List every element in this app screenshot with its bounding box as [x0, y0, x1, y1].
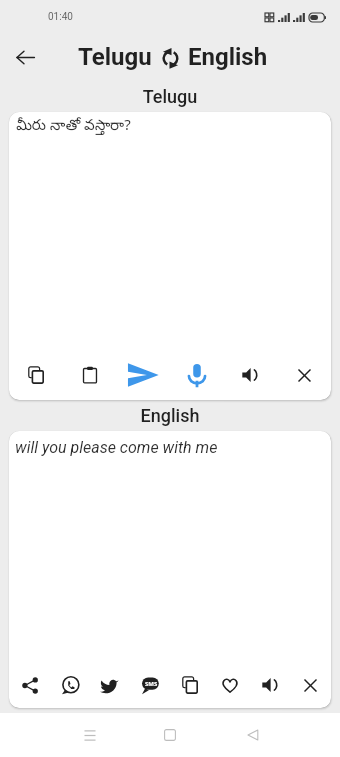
button[interactable]: Swap languages	[152, 39, 188, 75]
staticText: English	[188, 43, 268, 71]
staticText: will you please come with me	[15, 438, 218, 457]
button[interactable]: Clear	[287, 350, 321, 400]
staticText: Telugu	[78, 43, 152, 71]
button[interactable]: Back	[233, 713, 273, 757]
staticText: మీరు నాతో వస్తారా?	[16, 114, 131, 137]
button[interactable]: Translate	[126, 350, 160, 400]
button[interactable]: Favorite	[213, 662, 247, 708]
button[interactable]: Share	[13, 662, 47, 708]
button[interactable]: Back	[6, 38, 44, 76]
staticText: English	[0, 405, 340, 426]
button[interactable]: Copy	[19, 350, 53, 400]
staticText: SMS	[145, 680, 158, 688]
staticText: Telugu	[0, 86, 340, 107]
staticText: 01:40	[48, 11, 73, 23]
button[interactable]: Paste	[73, 350, 107, 400]
button[interactable]: Speak	[180, 350, 214, 400]
button[interactable]: Clear	[293, 662, 327, 708]
button[interactable]: Listen	[253, 662, 287, 708]
button[interactable]: Copy	[173, 662, 207, 708]
button[interactable]: Share on WhatsApp	[53, 662, 87, 708]
button[interactable]: Home	[150, 713, 190, 757]
button[interactable]: Recents	[70, 713, 110, 757]
button[interactable]: Send SMS	[133, 662, 167, 708]
button[interactable]: Listen	[233, 350, 267, 400]
button[interactable]: Share on Twitter	[92, 662, 126, 708]
